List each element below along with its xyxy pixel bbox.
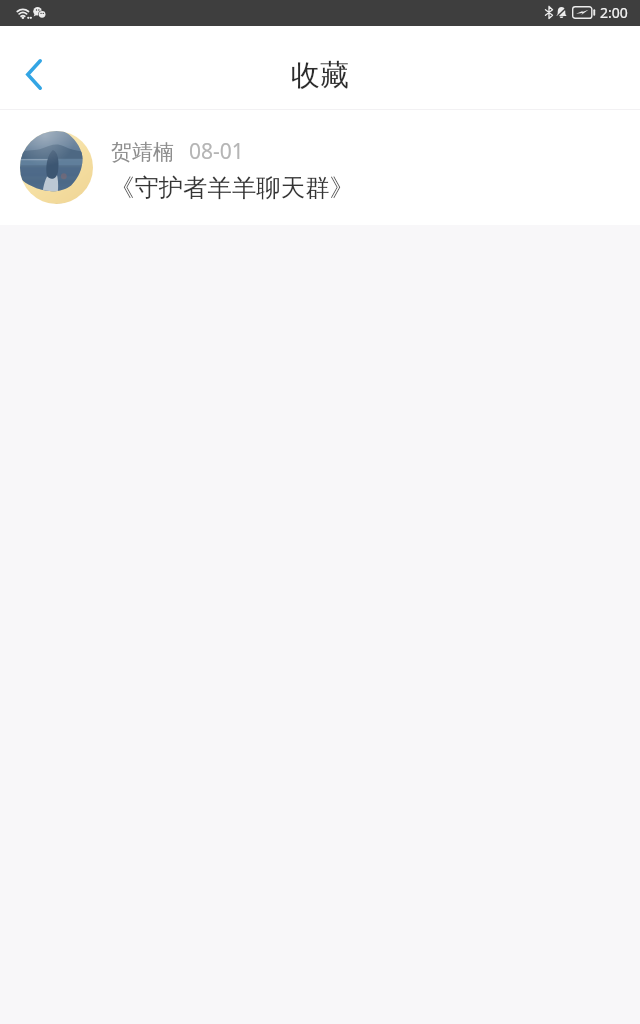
button[interactable]: 贺靖楠 (0, 110, 640, 225)
staticText: 收藏 (291, 57, 349, 94)
button[interactable]: Back (4, 44, 64, 104)
staticText: 2:00 (600, 3, 628, 22)
staticText: 贺靖楠 (111, 139, 174, 165)
staticText: 《守护者羊羊聊天群》 (110, 173, 354, 204)
staticText: 08-01 (189, 137, 244, 166)
